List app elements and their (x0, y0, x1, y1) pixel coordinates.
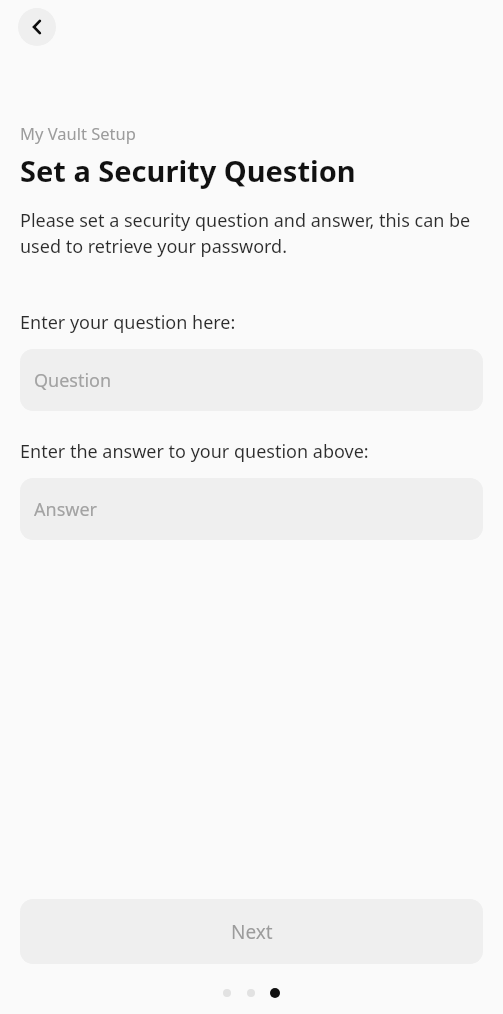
staticText: Question (34, 368, 112, 393)
staticText: Answer (34, 497, 97, 522)
button[interactable]: Question (20, 349, 483, 411)
staticText: Please set a security question and answe… (20, 208, 483, 259)
staticText: Enter the answer to your question above: (20, 439, 369, 464)
button[interactable]: Back (18, 8, 56, 46)
staticText: My Vault Setup (20, 122, 136, 144)
staticText: Enter your question here: (20, 310, 236, 335)
staticText: Set a Security Question (20, 151, 356, 190)
button[interactable]: Answer (20, 478, 483, 540)
button[interactable]: Next (20, 899, 483, 964)
staticText: Next (231, 919, 273, 945)
